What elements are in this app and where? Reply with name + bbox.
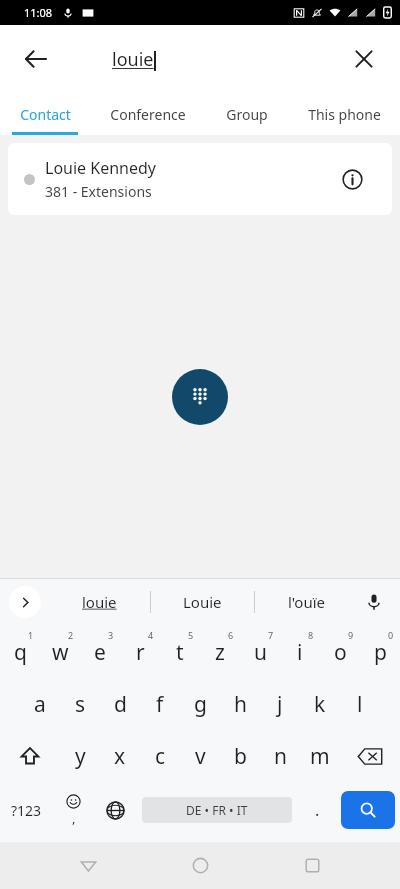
button[interactable]: a	[20, 678, 60, 730]
staticText: e	[94, 638, 106, 667]
staticText: h	[234, 690, 247, 719]
staticText: o	[334, 638, 347, 667]
button[interactable]: p	[360, 626, 400, 678]
staticText: louie	[82, 592, 117, 612]
button[interactable]: c	[140, 730, 180, 782]
staticText: 381 - Extensions	[45, 182, 152, 201]
staticText: Contact	[20, 105, 71, 124]
staticText: q	[14, 638, 27, 667]
button[interactable]: Contact info	[332, 159, 372, 199]
staticText: v	[195, 742, 206, 771]
button[interactable]: Group	[206, 93, 288, 135]
staticText: 2	[68, 629, 74, 641]
button[interactable]: This phone	[288, 93, 400, 135]
button[interactable]: Search	[341, 791, 395, 829]
button[interactable]: f	[140, 678, 180, 730]
staticText: x	[114, 742, 126, 771]
button[interactable]: Back	[64, 842, 112, 889]
staticText: y	[75, 742, 86, 771]
button[interactable]: b	[220, 730, 260, 782]
staticText: d	[114, 690, 127, 719]
button[interactable]: l	[340, 678, 380, 730]
button[interactable]: Backspace	[340, 730, 400, 782]
button[interactable]: j	[260, 678, 300, 730]
button[interactable]: Dialpad	[172, 369, 228, 425]
staticText: w	[52, 638, 69, 667]
button[interactable]: Recent apps	[288, 842, 336, 889]
button[interactable]: o	[320, 626, 360, 678]
staticText: louie	[112, 47, 154, 72]
button[interactable]: More suggestions	[9, 586, 41, 618]
button[interactable]: Louie	[151, 578, 254, 626]
staticText: l	[357, 690, 363, 719]
button[interactable]: n	[260, 730, 300, 782]
button[interactable]: w	[40, 626, 80, 678]
staticText: 5	[188, 629, 194, 641]
button[interactable]: v	[180, 730, 220, 782]
button[interactable]: q	[0, 626, 40, 678]
staticText: Conference	[110, 105, 186, 124]
button[interactable]: s	[60, 678, 100, 730]
staticText: Group	[226, 105, 268, 124]
button[interactable]: .	[298, 782, 336, 838]
button[interactable]: y	[60, 730, 100, 782]
staticText: Louie	[183, 592, 222, 612]
staticText: ?123	[11, 801, 42, 820]
staticText: DE • FR • IT	[186, 802, 248, 818]
button[interactable]: Conference	[90, 93, 206, 135]
staticText: l'ouïe	[288, 592, 326, 612]
button[interactable]: i	[280, 626, 320, 678]
button[interactable]: l'ouïe	[255, 578, 358, 626]
staticText: k	[314, 690, 326, 719]
staticText: 6	[228, 629, 234, 641]
staticText: u	[254, 638, 267, 667]
staticText: 0	[388, 629, 394, 641]
button[interactable]: Voice input	[356, 584, 392, 620]
staticText: b	[234, 742, 247, 771]
button[interactable]: x	[100, 730, 140, 782]
button[interactable]: ?123	[0, 782, 52, 838]
button[interactable]: Change language	[94, 782, 136, 838]
button[interactable]: d	[100, 678, 140, 730]
staticText: g	[194, 690, 207, 719]
staticText: p	[374, 638, 387, 667]
button[interactable]: Clear search	[340, 35, 388, 83]
staticText: This phone	[308, 105, 381, 124]
button[interactable]: louie	[48, 578, 150, 626]
staticText: ,	[72, 809, 76, 827]
staticText: m	[310, 742, 330, 771]
staticText: 1	[28, 629, 34, 641]
button[interactable]: Emoji	[52, 782, 94, 838]
button[interactable]: u	[240, 626, 280, 678]
staticText: n	[274, 742, 287, 771]
staticText: z	[215, 638, 225, 667]
button[interactable]: Contact	[0, 93, 90, 135]
staticText: a	[34, 690, 46, 719]
staticText: s	[75, 690, 86, 719]
button[interactable]: Back	[12, 35, 60, 83]
button[interactable]: Home	[176, 842, 224, 889]
button[interactable]: Louie Kennedy	[8, 143, 392, 215]
staticText: t	[176, 638, 184, 667]
staticText: 8	[308, 629, 314, 641]
button[interactable]: m	[300, 730, 340, 782]
button[interactable]: k	[300, 678, 340, 730]
staticText: 11:08	[24, 5, 53, 20]
staticText: c	[155, 742, 166, 771]
staticText: .	[315, 799, 320, 821]
staticText: 9	[348, 629, 354, 641]
button[interactable]: z	[200, 626, 240, 678]
staticText: 4	[148, 629, 154, 641]
button[interactable]: e	[80, 626, 120, 678]
staticText: j	[277, 690, 283, 719]
button[interactable]: t	[160, 626, 200, 678]
button[interactable]: g	[180, 678, 220, 730]
staticText: r	[136, 638, 145, 667]
button[interactable]: DE • FR • IT	[142, 797, 292, 823]
button[interactable]: r	[120, 626, 160, 678]
button[interactable]: h	[220, 678, 260, 730]
button[interactable]: Shift	[0, 730, 60, 782]
staticText: 3	[108, 629, 114, 641]
staticText: 7	[268, 629, 274, 641]
staticText: i	[297, 638, 303, 667]
